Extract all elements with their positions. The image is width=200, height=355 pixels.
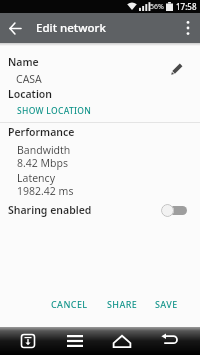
staticText: Edit network xyxy=(36,20,106,36)
button[interactable]: CANCEL xyxy=(47,294,92,314)
staticText: Location xyxy=(8,87,53,101)
button[interactable] xyxy=(0,13,30,43)
button[interactable] xyxy=(171,62,184,75)
staticText: 56% xyxy=(150,2,164,12)
button[interactable]: SHOW LOCATION xyxy=(14,102,95,120)
button[interactable] xyxy=(55,327,95,355)
staticText: Sharing enabled xyxy=(8,203,92,217)
button[interactable] xyxy=(176,13,200,43)
staticText: SHARE xyxy=(107,298,138,310)
button[interactable]: SAVE xyxy=(151,294,182,314)
staticText: Latency xyxy=(17,171,55,185)
button[interactable]: Sharing enabled xyxy=(0,196,200,224)
button[interactable] xyxy=(8,327,48,355)
staticText: CANCEL xyxy=(51,298,88,310)
staticText: CASA xyxy=(16,72,42,86)
staticText: 8.42 Mbps xyxy=(17,156,69,170)
button[interactable] xyxy=(149,327,189,355)
staticText: SHOW LOCATION xyxy=(17,105,92,117)
staticText: Bandwidth xyxy=(17,143,71,157)
button[interactable] xyxy=(161,203,187,217)
staticText: 1982.42 ms xyxy=(17,184,74,198)
button[interactable] xyxy=(102,327,142,355)
staticText: Performance xyxy=(8,125,75,139)
staticText: 17:58 xyxy=(176,1,197,12)
staticText: Name xyxy=(8,55,39,69)
button[interactable]: SHARE xyxy=(103,294,142,314)
staticText: SAVE xyxy=(155,298,178,310)
